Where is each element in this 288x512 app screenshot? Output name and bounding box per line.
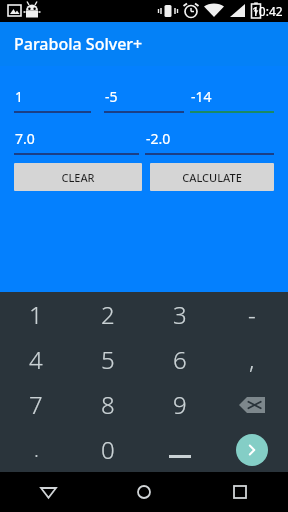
staticText: CLEAR [61,170,95,185]
staticText: 9 [173,388,187,421]
button[interactable]: 3 [144,292,216,337]
button[interactable]: 1 [14,87,91,113]
button[interactable]: 6 [144,337,216,382]
staticText: 2 [101,298,115,331]
staticText: 5 [101,343,115,376]
button[interactable]: Home [96,472,192,512]
staticText: 10:42 [252,3,283,19]
staticText: -14 [191,87,212,106]
button[interactable]: 1 [0,292,72,337]
button[interactable]: -14 [190,87,274,113]
staticText: 3 [173,298,187,331]
button[interactable]: 7 [0,382,72,427]
button[interactable]: Enter [216,427,288,472]
staticText: 0 [101,433,115,466]
staticText: -2.0 [146,129,171,148]
button[interactable]: Space [144,427,216,472]
staticText: - [248,298,256,331]
button[interactable]: 2 [72,292,144,337]
staticText: , [249,343,255,376]
staticText: 1 [15,87,24,106]
staticText: 7.0 [15,129,35,148]
button[interactable]: -5 [104,87,184,113]
button[interactable]: CLEAR [14,163,142,191]
button[interactable]: - [216,292,288,337]
staticText: Parabola Solver+ [14,33,143,55]
staticText: 6 [173,343,187,376]
staticText: -5 [105,87,118,106]
button[interactable]: 0 [72,427,144,472]
staticText: 1 [29,298,43,331]
button[interactable]: . [0,427,72,472]
button[interactable]: , [216,337,288,382]
button[interactable]: 9 [144,382,216,427]
button[interactable]: 7.0 [14,129,139,155]
button[interactable]: 4 [0,337,72,382]
button[interactable]: 5 [72,337,144,382]
button[interactable]: Back [0,472,96,512]
staticText: . [34,436,39,463]
staticText: 8 [101,388,115,421]
button[interactable]: Recents [192,472,288,512]
staticText: 7 [29,388,43,421]
button[interactable]: -2.0 [145,129,274,155]
button[interactable]: Backspace [216,382,288,427]
staticText: 4 [29,343,43,376]
button[interactable]: 8 [72,382,144,427]
staticText: CALCULATE [182,170,242,185]
button[interactable]: CALCULATE [150,163,274,191]
